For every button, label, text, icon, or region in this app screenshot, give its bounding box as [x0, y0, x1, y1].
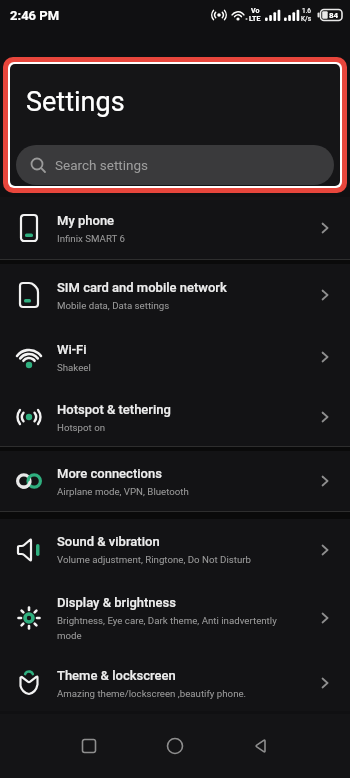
button[interactable]: Wi-Fi: [0, 326, 350, 388]
button[interactable]: My phone: [0, 197, 350, 259]
staticText: 84: [329, 11, 339, 20]
button[interactable]: [238, 723, 284, 769]
staticText: K/s: [301, 15, 312, 23]
staticText: Airplane mode, VPN, Bluetooth: [57, 486, 189, 497]
staticText: Brightness, Eye care, Dark theme, Anti i…: [57, 615, 277, 641]
staticText: My phone: [57, 213, 115, 228]
staticText: Hotspot & tethering: [57, 402, 171, 417]
staticText: Amazing theme/lockscreen ,beautify phone…: [57, 688, 247, 699]
button[interactable]: Sound & vibration: [0, 519, 350, 580]
staticText: Shakeel: [57, 362, 91, 373]
staticText: Sound & vibration: [57, 534, 160, 549]
button[interactable]: Theme & lockscreen: [0, 655, 350, 711]
staticText: SIM card and mobile network: [57, 280, 227, 295]
staticText: Search settings: [55, 157, 149, 173]
staticText: Settings: [26, 86, 125, 118]
button[interactable]: [152, 723, 198, 769]
staticText: Volume adjustment, Ringtone, Do Not Dist…: [57, 554, 251, 565]
button[interactable]: [66, 723, 112, 769]
button[interactable]: SIM card and mobile network: [0, 264, 350, 326]
staticText: Hotspot on: [57, 422, 106, 433]
staticText: 2:46 PM: [10, 8, 60, 23]
button[interactable]: Display & brightness: [0, 580, 350, 655]
button[interactable]: More connections: [0, 451, 350, 511]
staticText: Display & brightness: [57, 595, 177, 610]
staticText: Infinix SMART 6: [57, 233, 125, 244]
staticText: Theme & lockscreen: [57, 668, 176, 683]
staticText: LTE: [249, 15, 261, 23]
staticText: Vo: [251, 7, 260, 15]
staticText: More connections: [57, 466, 162, 481]
staticText: Wi-Fi: [57, 342, 87, 357]
button[interactable]: Search settings: [16, 145, 334, 185]
staticText: Mobile data, Data settings: [57, 300, 170, 311]
staticText: 1.6: [302, 7, 312, 15]
button[interactable]: Hotspot & tethering: [0, 388, 350, 446]
